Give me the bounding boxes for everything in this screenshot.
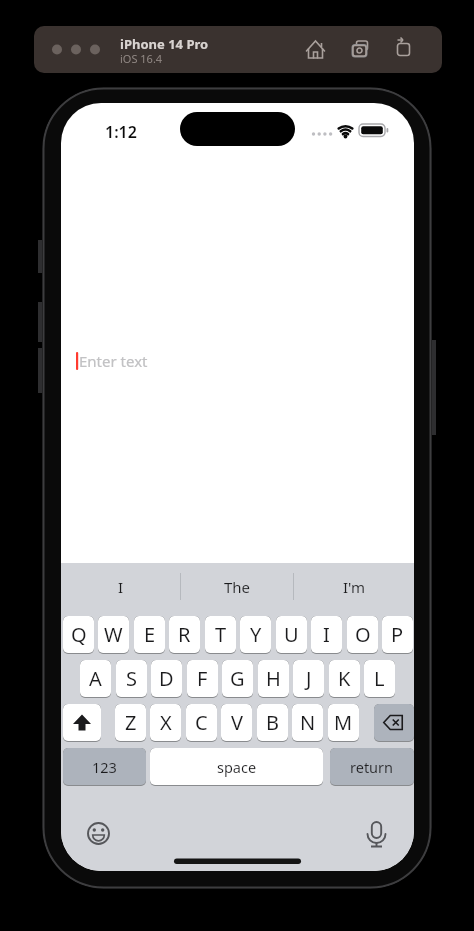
button[interactable]: Y	[240, 616, 271, 654]
staticText: B	[266, 709, 279, 736]
staticText: Y	[250, 621, 262, 648]
button[interactable]: W	[98, 616, 129, 654]
staticText: S	[126, 665, 137, 692]
staticText: space	[217, 757, 257, 777]
staticText: M	[334, 709, 353, 736]
button[interactable]	[71, 343, 404, 379]
staticText: return	[350, 757, 394, 777]
button[interactable]: O	[347, 616, 378, 654]
staticText: Q	[71, 621, 87, 648]
staticText: V	[231, 709, 243, 736]
staticText: X	[160, 709, 172, 736]
button[interactable]: The	[180, 563, 294, 610]
button[interactable]	[85, 820, 112, 847]
button[interactable]: A	[80, 660, 111, 698]
staticText: A	[89, 665, 102, 692]
button[interactable]: return	[330, 748, 414, 786]
staticText: F	[197, 665, 208, 692]
button[interactable]: J	[293, 660, 324, 698]
button[interactable]: I	[61, 563, 180, 610]
staticText: Z	[125, 709, 137, 736]
staticText: E	[144, 621, 156, 648]
staticText: K	[338, 665, 351, 692]
staticText: iOS 16.4	[120, 51, 163, 66]
button[interactable]: N	[292, 704, 323, 742]
button[interactable]: I'm	[294, 563, 414, 610]
staticText: The	[224, 577, 251, 597]
button[interactable]: B	[257, 704, 288, 742]
staticText: J	[306, 665, 312, 692]
button[interactable]: T	[205, 616, 236, 654]
button[interactable]: M	[328, 704, 359, 742]
staticText: G	[230, 665, 245, 692]
button[interactable]: L	[364, 660, 395, 698]
staticText: 1:12	[105, 121, 137, 143]
staticText: C	[195, 709, 208, 736]
staticText: O	[355, 621, 371, 648]
button[interactable]: 123	[63, 748, 146, 786]
button[interactable]: C	[186, 704, 217, 742]
staticText: 123	[92, 757, 117, 777]
button[interactable]: P	[382, 616, 413, 654]
button[interactable]: space	[150, 748, 323, 786]
staticText: I'm	[343, 577, 366, 597]
staticText: T	[215, 621, 227, 648]
staticText: I	[323, 621, 330, 648]
button[interactable]: R	[169, 616, 200, 654]
button[interactable]: H	[258, 660, 289, 698]
button[interactable]	[390, 35, 418, 63]
button[interactable]: E	[134, 616, 165, 654]
button[interactable]: I	[311, 616, 342, 654]
button[interactable]	[63, 704, 101, 742]
staticText: D	[159, 665, 174, 692]
staticText: L	[374, 665, 385, 692]
button[interactable]	[374, 704, 414, 742]
staticText: U	[284, 621, 299, 648]
staticText: W	[104, 621, 123, 648]
staticText: N	[300, 709, 316, 736]
button[interactable]: D	[151, 660, 182, 698]
button[interactable]: F	[187, 660, 218, 698]
button[interactable]: X	[150, 704, 181, 742]
staticText: P	[391, 621, 404, 648]
button[interactable]: G	[222, 660, 253, 698]
staticText: I	[118, 577, 124, 597]
staticText: H	[266, 665, 281, 692]
staticText: iPhone 14 Pro	[120, 35, 209, 53]
button[interactable]: S	[116, 660, 147, 698]
button[interactable]: Q	[63, 616, 94, 654]
button[interactable]	[302, 35, 330, 63]
button[interactable]: K	[329, 660, 360, 698]
button[interactable]: V	[221, 704, 252, 742]
staticText: Enter text	[79, 351, 148, 371]
button[interactable]: Z	[115, 704, 146, 742]
staticText: R	[178, 621, 191, 648]
button[interactable]	[363, 820, 390, 847]
button[interactable]	[347, 35, 375, 63]
button[interactable]: U	[276, 616, 307, 654]
